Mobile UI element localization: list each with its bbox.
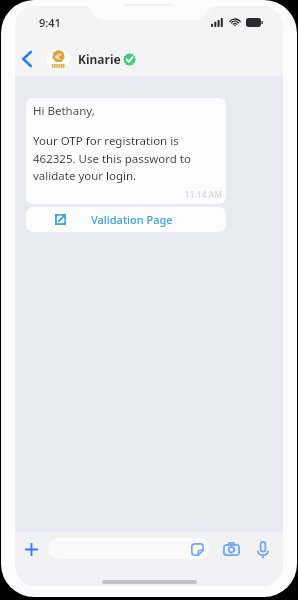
button[interactable]: Hi Bethany, — [26, 98, 226, 204]
button[interactable]: Kinarie — [78, 51, 121, 67]
button[interactable]: Camera — [223, 542, 240, 556]
button[interactable]: Open validation page — [26, 207, 226, 232]
button[interactable]: Message — [48, 538, 209, 559]
staticText: 9:41 — [39, 15, 61, 30]
staticText: Your OTP for registration is 462325. Use… — [33, 133, 219, 183]
button[interactable]: Voice message — [257, 541, 269, 558]
button[interactable]: Back — [15, 40, 40, 78]
button[interactable]: Add attachment — [21, 539, 41, 559]
staticText: Validation Page — [91, 212, 173, 227]
button[interactable]: Stickers — [191, 543, 204, 556]
other: Open validation page — [55, 214, 66, 225]
staticText: 11.14 AM — [33, 189, 222, 201]
staticText: Hi Bethany, — [33, 103, 95, 119]
button[interactable]: Kinarie profile — [47, 48, 70, 71]
